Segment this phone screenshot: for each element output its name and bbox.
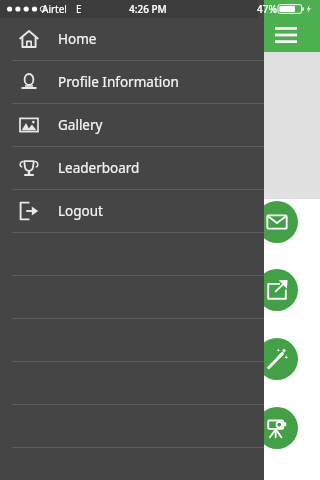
staticText: E [76, 2, 82, 16]
button[interactable]: Logout [0, 190, 264, 232]
button[interactable]: Leaderboard [0, 147, 264, 189]
button[interactable]: Mail [256, 201, 298, 243]
staticText: Home [58, 30, 97, 48]
staticText: 47% [257, 2, 277, 16]
staticText: 4:26 PM [129, 2, 167, 16]
button[interactable]: Home [0, 18, 264, 60]
staticText: Logout [58, 202, 103, 220]
button[interactable]: Profile Information [0, 61, 264, 103]
button[interactable]: Magic [256, 338, 298, 380]
staticText: Leaderboard [58, 159, 140, 177]
button[interactable]: Open navigation menu [268, 20, 304, 50]
staticText: Airtel [42, 2, 67, 16]
button[interactable]: Share [256, 269, 298, 311]
button[interactable]: Camera [256, 407, 298, 449]
staticText: Profile Information [58, 73, 179, 91]
staticText: Gallery [58, 116, 103, 134]
button[interactable]: Gallery [0, 104, 264, 146]
